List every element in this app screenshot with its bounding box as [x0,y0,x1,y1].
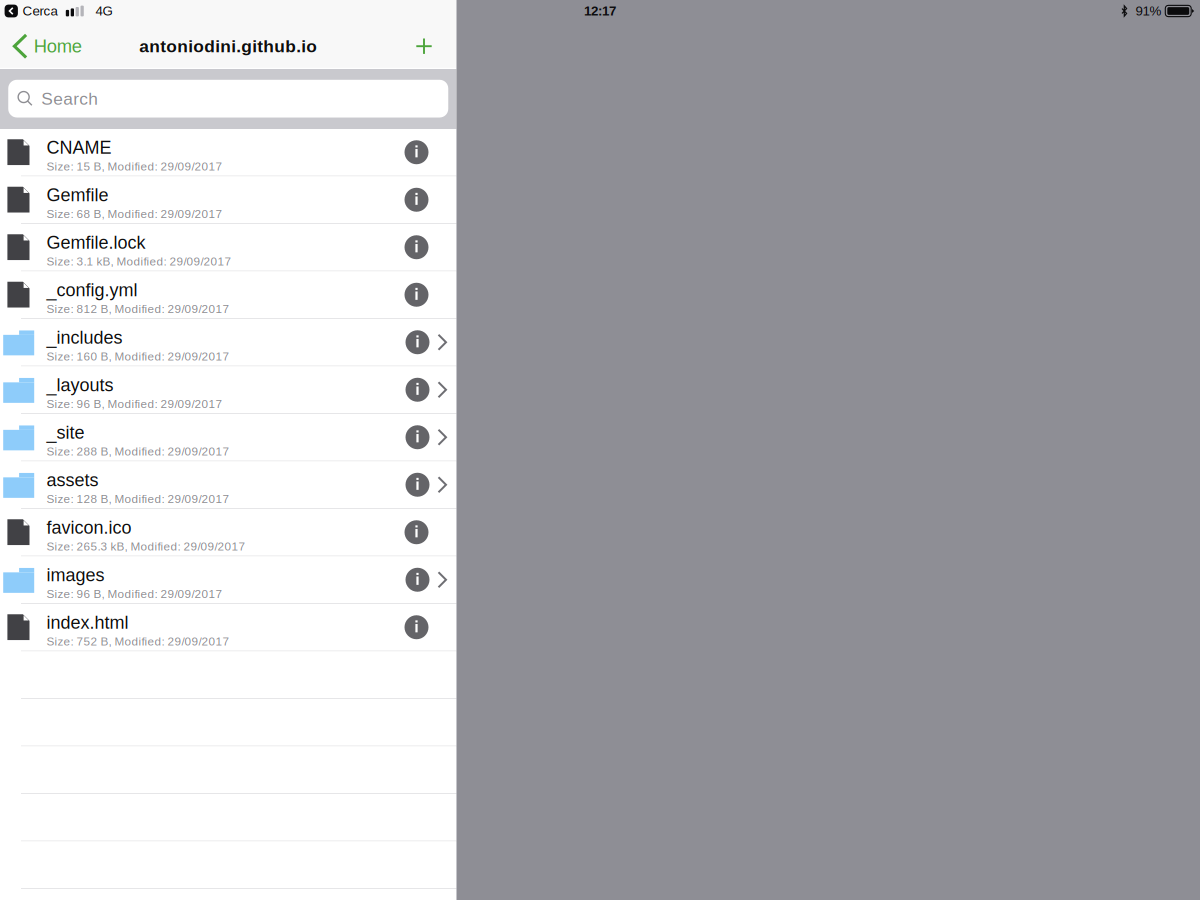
staticText: images [47,565,105,585]
staticText: Search [41,89,98,108]
staticText: Size: 96 B, Modified: 29/09/2017 [47,587,223,601]
staticText: Size: 812 B, Modified: 29/09/2017 [47,302,230,316]
staticText: assets [47,470,99,490]
button[interactable]: Info [398,468,436,502]
staticText: Size: 68 B, Modified: 29/09/2017 [47,207,223,221]
button[interactable]: _site [0,414,456,461]
button[interactable]: Info [397,230,435,264]
staticText: Size: 752 B, Modified: 29/09/2017 [47,635,230,648]
staticText: Home [34,36,82,56]
staticText: _config.yml [47,280,138,300]
staticText: antoniodini.github.io [139,36,317,56]
button[interactable]: _includes [0,319,456,366]
button[interactable]: Info [397,135,435,169]
button[interactable]: Add [402,24,446,68]
button[interactable]: assets [0,461,456,509]
button[interactable]: Info [398,373,436,407]
staticText: Size: 96 B, Modified: 29/09/2017 [47,397,223,411]
button[interactable]: Home [0,23,92,69]
button[interactable]: Info [397,278,435,312]
button[interactable]: CNAME [0,129,456,176]
button[interactable]: images [0,556,456,604]
staticText: CNAME [47,137,112,157]
staticText: Size: 265.3 kB, Modified: 29/09/2017 [47,540,246,553]
staticText: 4G [95,4,112,18]
button[interactable]: Info [397,515,435,549]
staticText: 12:17 [584,4,616,18]
staticText: 91% [1136,4,1162,18]
button[interactable]: favicon.ico [0,509,456,556]
button[interactable]: Cerca [5,4,57,18]
staticText: _site [47,422,85,442]
staticText: Gemfile.lock [47,232,146,252]
button[interactable]: index.html [0,604,456,651]
staticText: Size: 128 B, Modified: 29/09/2017 [47,492,230,506]
staticText: Gemfile [47,185,109,205]
button[interactable]: Gemfile.lock [0,224,456,271]
button[interactable]: _config.yml [0,271,456,319]
staticText: Size: 15 B, Modified: 29/09/2017 [47,160,223,173]
staticText: _includes [47,327,123,347]
button[interactable]: _layouts [0,366,456,414]
staticText: Size: 160 B, Modified: 29/09/2017 [47,350,230,363]
staticText: Cerca [22,4,57,18]
staticText: index.html [47,612,129,632]
button[interactable]: Gemfile [0,176,456,224]
staticText: _layouts [47,375,114,395]
button[interactable]: Info [398,325,436,359]
button[interactable]: Search [8,80,448,117]
staticText: Size: 3.1 kB, Modified: 29/09/2017 [47,255,232,268]
button[interactable]: Info [398,420,436,454]
staticText: favicon.ico [47,517,132,537]
staticText: Size: 288 B, Modified: 29/09/2017 [47,445,230,458]
button[interactable]: Info [397,610,435,644]
button[interactable]: Info [397,183,435,217]
button[interactable]: Info [398,563,436,597]
